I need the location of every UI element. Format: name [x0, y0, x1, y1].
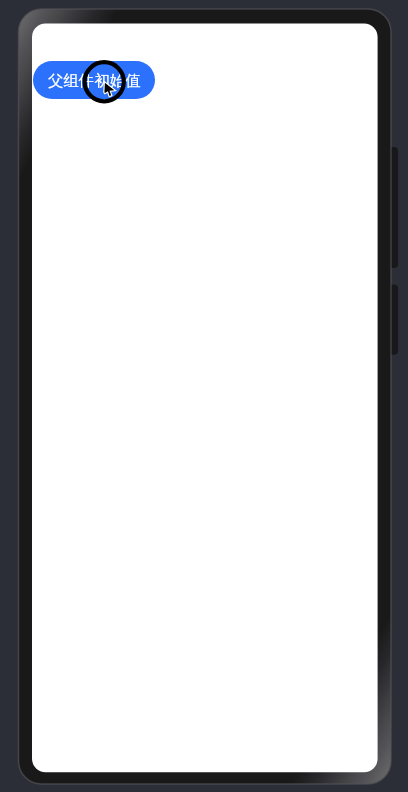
button[interactable]: 父组件初始值 — [33, 61, 155, 99]
other: Pointer — [80, 56, 132, 108]
staticText: 父组件初始值 — [48, 71, 141, 90]
